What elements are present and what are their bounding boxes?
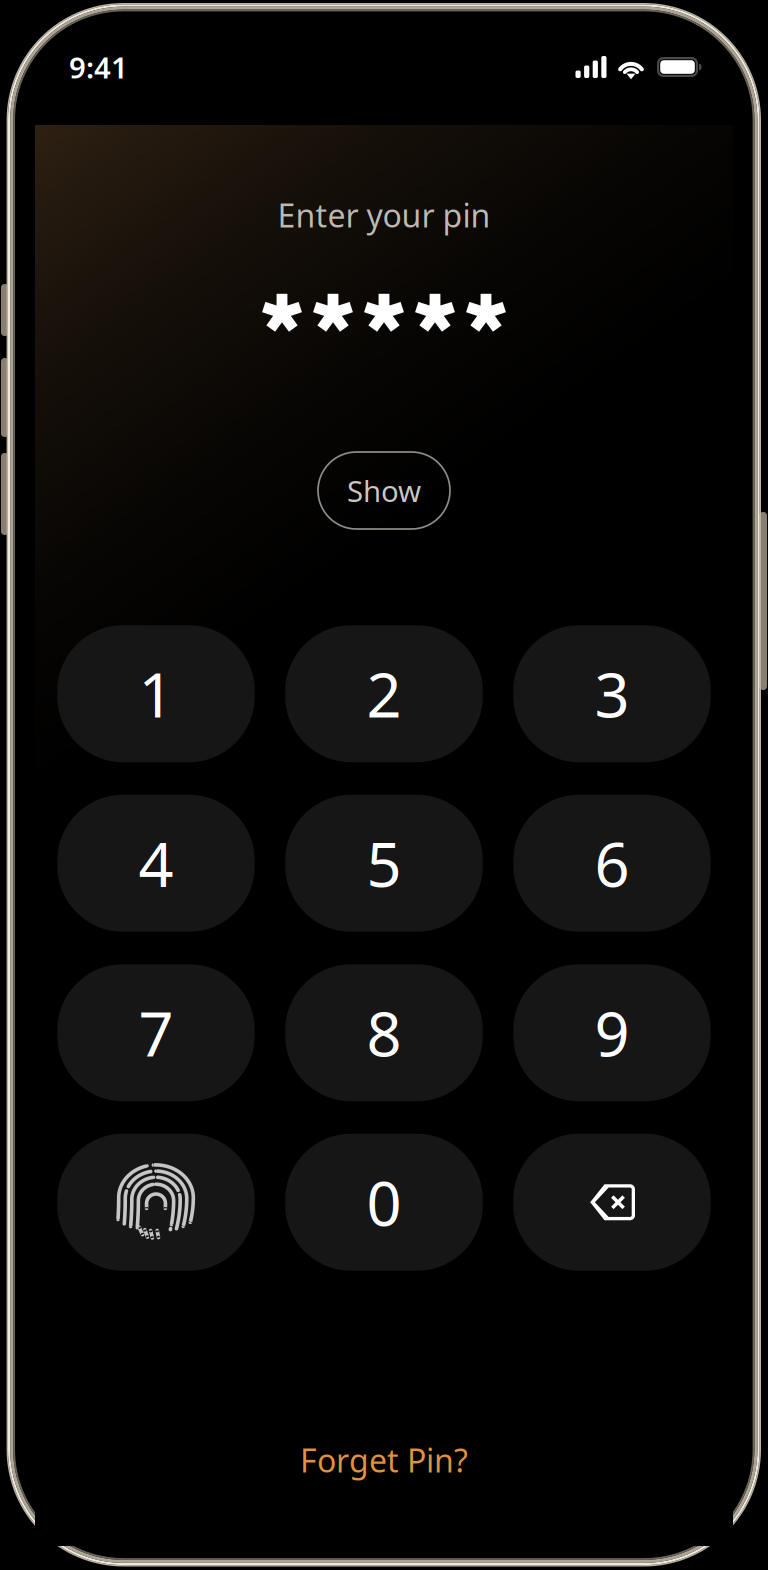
button[interactable]: Touch ID [57,1134,255,1271]
button[interactable]: Delete [513,1134,711,1271]
button[interactable]: 0 [285,1134,483,1271]
staticText: Forget Pin? [300,1439,468,1481]
staticText: Enter your pin [277,194,490,236]
staticText: 0 [366,1161,401,1243]
button[interactable]: 5 [285,795,483,932]
staticText: 8 [366,992,401,1073]
staticText: 1 [138,653,173,734]
staticText: 4 [138,822,173,904]
staticText: 5 [366,822,401,904]
staticText: 9:41 [69,47,128,86]
staticText: 3 [594,653,629,734]
button[interactable]: 9 [513,964,711,1101]
button[interactable]: Show [318,452,450,529]
staticText: Show [347,471,421,510]
button[interactable]: 6 [513,795,711,932]
button[interactable]: Forget Pin? [224,1437,544,1483]
button[interactable]: 2 [285,625,483,762]
button[interactable]: 1 [57,625,255,762]
button[interactable]: 3 [513,625,711,762]
button[interactable]: 4 [57,795,255,932]
staticText: 6 [594,822,629,904]
staticText: 7 [138,992,173,1073]
staticText: 2 [366,653,401,734]
button[interactable]: 7 [57,964,255,1101]
button[interactable]: 8 [285,964,483,1101]
staticText: 9 [594,992,629,1073]
